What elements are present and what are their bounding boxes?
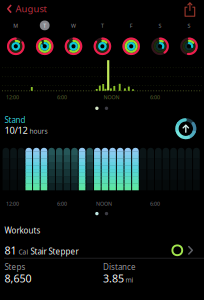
staticText: 6:00 bbox=[150, 200, 160, 207]
button[interactable]: T bbox=[87, 20, 117, 58]
staticText: August bbox=[15, 2, 46, 15]
staticText: Stand bbox=[4, 114, 25, 125]
staticText: 8,650 bbox=[4, 271, 31, 285]
staticText: T bbox=[101, 22, 104, 29]
button[interactable]: 81 bbox=[0, 240, 204, 260]
staticText: 6:00 bbox=[57, 200, 67, 207]
staticText: 81 bbox=[4, 243, 16, 257]
staticText: Distance bbox=[103, 261, 136, 272]
staticText: 6:00 bbox=[57, 94, 67, 101]
button[interactable]: S bbox=[145, 20, 175, 58]
staticText: S bbox=[159, 22, 162, 29]
staticText: Cal bbox=[18, 247, 28, 256]
button[interactable]: S bbox=[174, 20, 204, 58]
staticText: W bbox=[71, 22, 76, 29]
staticText: Workouts bbox=[4, 225, 40, 236]
staticText: NOON bbox=[96, 200, 112, 207]
button[interactable]: M bbox=[1, 20, 31, 58]
button[interactable] bbox=[185, 2, 196, 17]
staticText: 6:00 bbox=[150, 94, 160, 101]
staticText: 12:00 bbox=[6, 200, 19, 207]
button[interactable]: T bbox=[30, 20, 60, 58]
staticText: Steps bbox=[4, 261, 25, 272]
staticText: mi bbox=[125, 275, 133, 284]
button[interactable]: F bbox=[116, 20, 146, 58]
staticText: S bbox=[187, 22, 190, 29]
button[interactable]: W bbox=[58, 20, 88, 58]
staticText: 12:00 bbox=[6, 94, 19, 101]
button[interactable]: August bbox=[3, 0, 59, 17]
staticText: T bbox=[43, 22, 46, 29]
staticText: 10/12 bbox=[4, 124, 27, 136]
staticText: M bbox=[13, 22, 18, 29]
staticText: 3.85 bbox=[103, 271, 124, 285]
staticText: NOON bbox=[103, 94, 119, 101]
staticText: F bbox=[130, 22, 133, 29]
staticText: hours bbox=[29, 127, 47, 136]
staticText: Stair Stepper bbox=[30, 246, 78, 257]
